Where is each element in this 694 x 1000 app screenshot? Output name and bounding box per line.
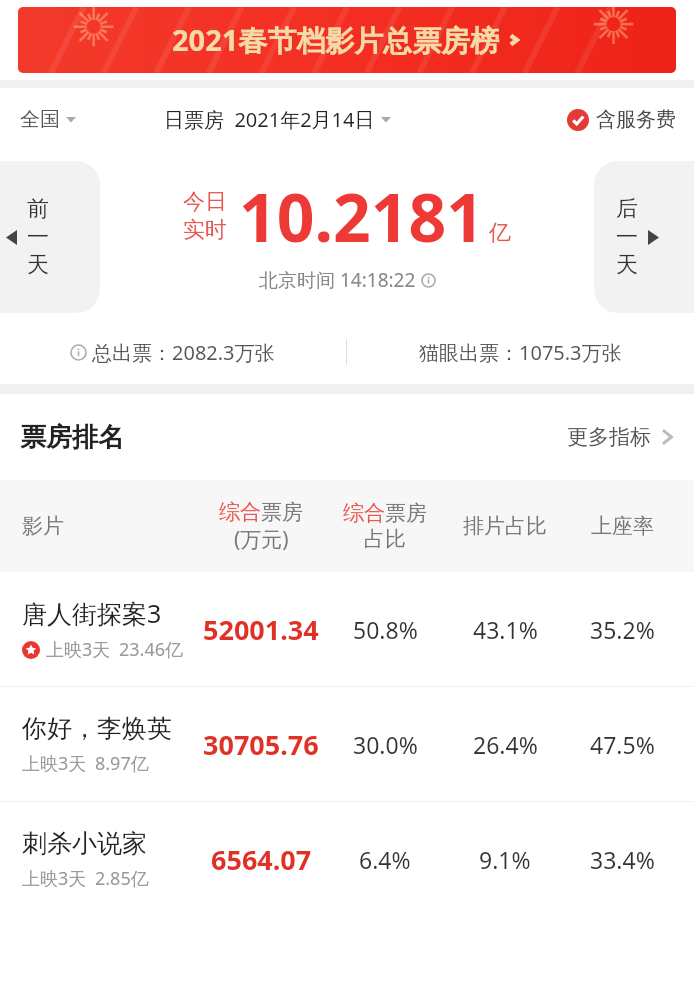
staticText: 30.0% — [353, 729, 418, 760]
staticText: 上映3天 — [46, 637, 111, 662]
staticText: 8.97亿 — [95, 751, 149, 776]
button[interactable]: 2021春节档影片总票房榜 — [18, 7, 676, 73]
staticText: (万元) — [234, 525, 289, 554]
staticText: 9.1% — [479, 844, 531, 875]
staticText: 排片占比 — [463, 513, 547, 539]
button[interactable]: 唐人街探案3 — [0, 572, 694, 686]
staticText: 前 — [27, 195, 49, 223]
staticText: 天 — [27, 251, 49, 279]
staticText: 上映3天 — [22, 751, 87, 776]
staticText: 影片 — [22, 513, 64, 539]
button[interactable]: 日票房 2021年2月14日 — [164, 106, 391, 133]
button[interactable]: 总出票：2082.3万张 — [0, 339, 346, 366]
button[interactable]: 全国 — [20, 107, 76, 132]
button[interactable]: 后一天 — [594, 161, 694, 313]
staticText: 6564.07 — [211, 841, 312, 878]
staticText: 更多指标 — [567, 424, 651, 450]
staticText: 综合票房 — [343, 500, 427, 526]
staticText: 一 — [616, 223, 638, 251]
staticText: 综合票房 — [219, 499, 303, 525]
staticText: 含服务费 — [596, 107, 676, 132]
staticText: 6.4% — [359, 844, 411, 875]
staticText: 后 — [616, 195, 638, 223]
staticText: 47.5% — [590, 729, 655, 760]
staticText: 实时 — [183, 216, 227, 244]
staticText: 30705.76 — [203, 726, 319, 763]
staticText: 日票房 2021年2月14日 — [164, 106, 375, 133]
staticText: 10.2181 — [239, 171, 485, 261]
staticText: 你好，李焕英 — [22, 713, 172, 744]
staticText: 总出票：2082.3万张 — [92, 339, 275, 366]
staticText: 亿 — [489, 219, 511, 247]
staticText: 票房排名 — [20, 421, 124, 454]
staticText: 35.2% — [590, 614, 655, 645]
staticText: 唐人街探案3 — [22, 596, 162, 630]
staticText: 33.4% — [590, 844, 655, 875]
staticText: 一 — [27, 223, 49, 251]
staticText: 2021春节档影片总票房榜 — [172, 20, 500, 60]
staticText: 占比 — [364, 526, 406, 552]
button[interactable]: 刺杀小说家 — [0, 802, 694, 916]
button[interactable]: 你好，李焕英 — [0, 687, 694, 801]
button[interactable]: 前一天 — [0, 161, 100, 313]
staticText: 今日 — [183, 188, 227, 216]
staticText: 刺杀小说家 — [22, 828, 147, 859]
button[interactable]: 含服务费 — [567, 107, 676, 132]
staticText: 52001.34 — [203, 611, 319, 648]
staticText: 天 — [616, 251, 638, 279]
button[interactable]: 更多指标 — [567, 424, 674, 450]
staticText: 26.4% — [473, 729, 538, 760]
staticText: 上座率 — [591, 513, 654, 539]
staticText: 全国 — [20, 107, 60, 132]
staticText: 43.1% — [473, 614, 538, 645]
staticText: 上映3天 — [22, 866, 87, 891]
staticText: 23.46亿 — [119, 637, 184, 662]
staticText: 50.8% — [353, 614, 418, 645]
staticText: 2.85亿 — [95, 866, 149, 891]
staticText: 北京时间 14:18:22 — [259, 267, 416, 293]
staticText: 猫眼出票：1075.3万张 — [419, 339, 622, 366]
